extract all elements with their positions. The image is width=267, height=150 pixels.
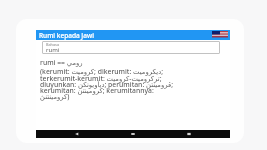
button[interactable]: Home [124, 130, 142, 138]
staticText: Bahasa [46, 42, 60, 47]
staticText: Rumi kepada Jawi [39, 31, 94, 40]
button[interactable]: Rumi kepada Jawi [36, 30, 230, 40]
button[interactable]: Back [68, 130, 86, 138]
button[interactable]: Bahasa Melayu [212, 31, 228, 37]
button[interactable]: Bahasa [42, 41, 220, 54]
staticText: (kerumit: كروميت; dikerumit: ديكروميت; t… [40, 67, 215, 101]
staticText: rumi [46, 46, 60, 54]
button[interactable]: Recent apps [180, 130, 198, 138]
staticText: rumi == رومي [40, 58, 83, 67]
